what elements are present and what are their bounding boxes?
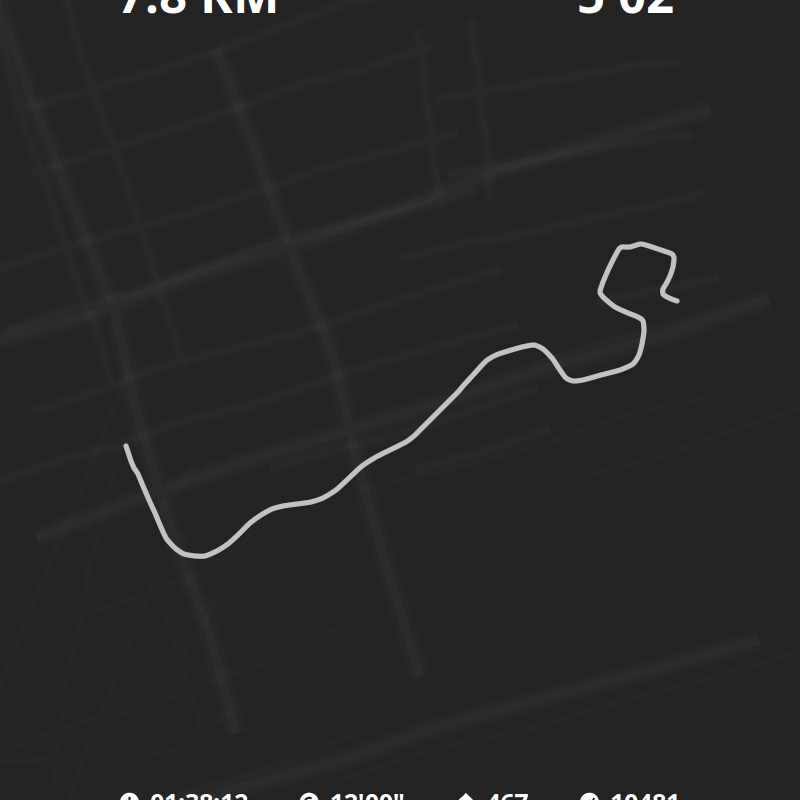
staticText: 5'02" xyxy=(577,0,698,26)
staticText: 01:38:12 xyxy=(150,785,248,800)
staticText: 10481 xyxy=(610,785,680,800)
button[interactable]: Calories 467 xyxy=(456,785,528,800)
staticText: 7.8 KM xyxy=(117,0,280,26)
button[interactable]: Pace 12'00" xyxy=(300,785,405,800)
staticText: 12'00" xyxy=(330,785,405,800)
button[interactable]: Duration 01:38:12 xyxy=(120,785,248,800)
button[interactable]: Steps 10481 xyxy=(580,785,680,800)
staticText: 467 xyxy=(486,785,528,800)
